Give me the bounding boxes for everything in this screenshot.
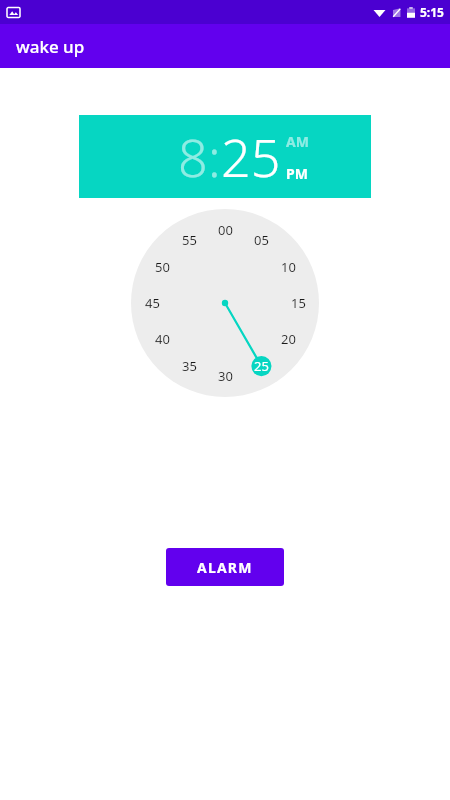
staticText: 40 (155, 330, 170, 348)
button[interactable]: 25 (221, 121, 281, 192)
staticText: 05 (254, 231, 269, 249)
staticText: ALARM (197, 558, 253, 577)
staticText: 15 (291, 294, 306, 312)
staticText: AM (286, 132, 309, 151)
staticText: 25 (254, 357, 269, 375)
staticText: PM (286, 164, 308, 183)
staticText: 30 (218, 367, 233, 385)
staticText: wake up (16, 35, 85, 58)
button[interactable]: 8 (178, 121, 208, 192)
staticText: 50 (155, 258, 170, 276)
button[interactable]: ALARM (166, 548, 284, 586)
staticText: 5:15 (420, 4, 444, 20)
button[interactable]: Minute picker (131, 209, 319, 397)
staticText: 00 (218, 221, 233, 239)
staticText: 25 (221, 121, 281, 192)
button[interactable]: AM (286, 132, 309, 151)
staticText: : (208, 121, 221, 192)
staticText: 20 (281, 330, 296, 348)
staticText: 55 (182, 231, 197, 249)
button[interactable]: PM (286, 164, 308, 183)
staticText: 8 (178, 121, 208, 192)
staticText: 45 (145, 294, 160, 312)
staticText: 35 (182, 357, 197, 375)
staticText: 10 (281, 258, 296, 276)
